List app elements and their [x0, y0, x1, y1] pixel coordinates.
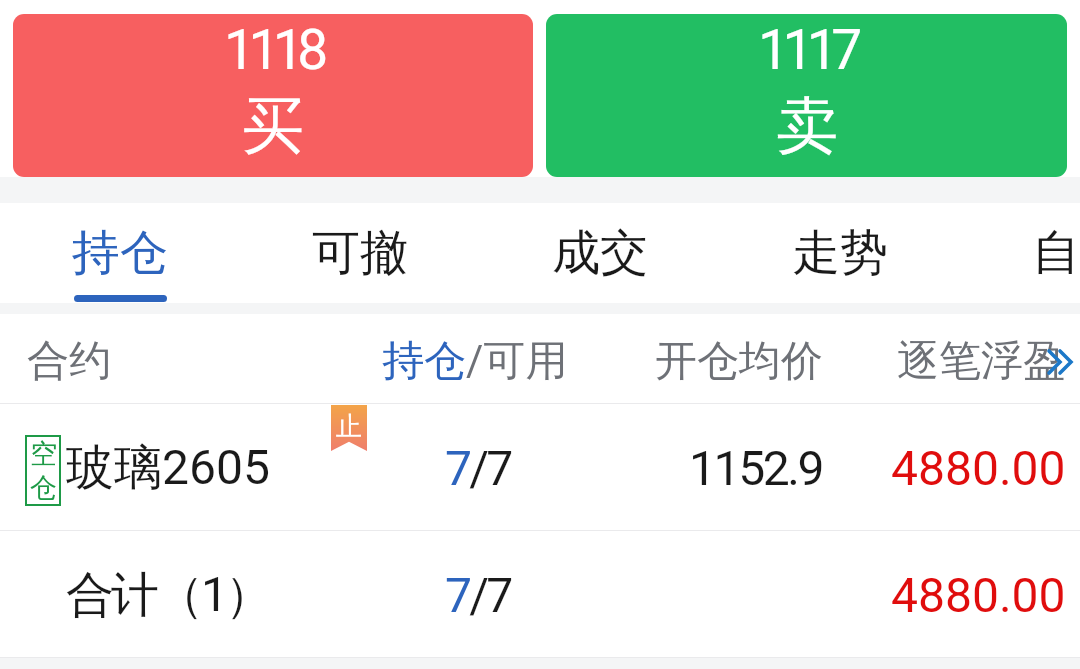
button[interactable]: 合计（1） [0, 531, 1080, 657]
staticText: 持仓 [72, 223, 168, 283]
button[interactable]: 走势 [720, 203, 960, 303]
staticText: 1117 [758, 18, 856, 82]
staticText: 玻璃2605 [66, 438, 270, 498]
staticText: 1152.9 [689, 440, 823, 496]
button[interactable]: 自选 [960, 203, 1080, 303]
staticText: 自选 [1032, 223, 1080, 283]
button[interactable]: 可撤 [240, 203, 480, 303]
button[interactable]: 空 [0, 404, 1080, 530]
staticText: 4880.00 [891, 440, 1066, 496]
staticText: 7/7 [445, 567, 511, 623]
staticText: 逐笔浮盈 [897, 335, 1065, 388]
staticText: 4880.00 [891, 567, 1066, 623]
button[interactable]: 成交 [480, 203, 720, 303]
staticText: 走势 [792, 223, 888, 283]
staticText: 空 [30, 437, 57, 471]
staticText: 7/7 [445, 440, 511, 496]
button[interactable]: 1118 [13, 14, 533, 177]
button[interactable]: Show more columns [1028, 334, 1080, 390]
staticText: 卖 [776, 87, 838, 165]
staticText: 止 [336, 410, 362, 443]
staticText: 合约 [27, 335, 111, 388]
staticText: 1118 [224, 18, 322, 82]
staticText: 买 [242, 87, 304, 165]
button[interactable]: 1117 [546, 14, 1067, 177]
staticText: 成交 [552, 223, 648, 283]
staticText: 仓 [30, 471, 57, 505]
staticText: 开仓均价 [655, 335, 823, 388]
staticText: 可撤 [312, 223, 408, 283]
staticText: 合计（1） [66, 565, 270, 625]
button[interactable]: 持仓 [0, 203, 240, 303]
staticText: 持仓/可用 [382, 335, 568, 388]
